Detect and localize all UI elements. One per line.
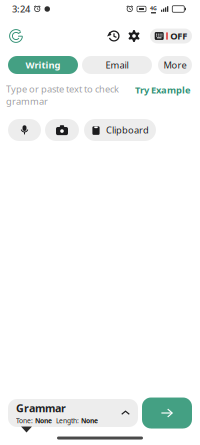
button[interactable]: History [104,26,124,46]
staticText: Email [105,59,128,71]
button[interactable]: Grammarly [5,25,27,47]
staticText: Type or paste text to check grammar [6,83,119,107]
staticText: More [163,59,186,71]
button[interactable]: Keyboard off [150,28,192,43]
button[interactable]: Send [142,397,192,428]
staticText: Try Example [135,84,191,96]
button[interactable]: Try Example [135,84,191,96]
staticText: 3:24 [12,3,30,15]
button[interactable]: Clipboard [84,119,156,141]
button[interactable]: More [158,56,192,74]
staticText: Writing [25,59,60,71]
staticText: Grammar [16,401,66,415]
staticText: 4G [150,5,157,12]
button[interactable]: Scan text [45,119,79,141]
staticText: OFF [170,30,187,42]
staticText: Clipboard [106,124,149,136]
button[interactable]: Settings [124,26,144,46]
staticText: Tone: None Length: None [16,416,98,425]
button[interactable]: Grammar [8,399,138,427]
button[interactable]: Dictate [8,119,41,141]
button[interactable]: Writing [8,56,78,74]
button[interactable]: Email [82,56,152,74]
